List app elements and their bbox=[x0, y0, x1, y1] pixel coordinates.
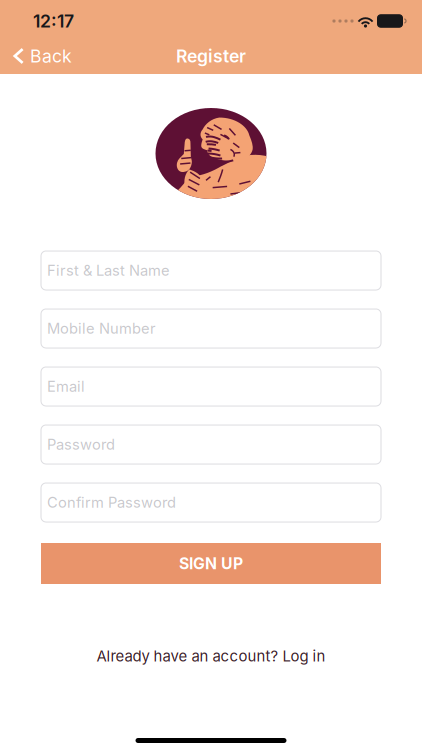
staticText: Register bbox=[176, 45, 246, 67]
staticText: Password bbox=[47, 436, 115, 453]
staticText: First & Last Name bbox=[47, 262, 170, 279]
staticText: 12:17 bbox=[33, 10, 74, 32]
staticText: Already have an account? Log in bbox=[96, 647, 325, 665]
button[interactable]: Back bbox=[0, 43, 82, 73]
button[interactable]: SIGN UP bbox=[41, 543, 381, 584]
staticText: SIGN UP bbox=[179, 554, 243, 573]
staticText: Email bbox=[47, 378, 85, 395]
staticText: Back bbox=[30, 45, 72, 67]
staticText: Confirm Password bbox=[47, 494, 176, 511]
staticText: Mobile Number bbox=[47, 320, 156, 337]
button[interactable]: Already have an account? Log in bbox=[86, 641, 335, 671]
